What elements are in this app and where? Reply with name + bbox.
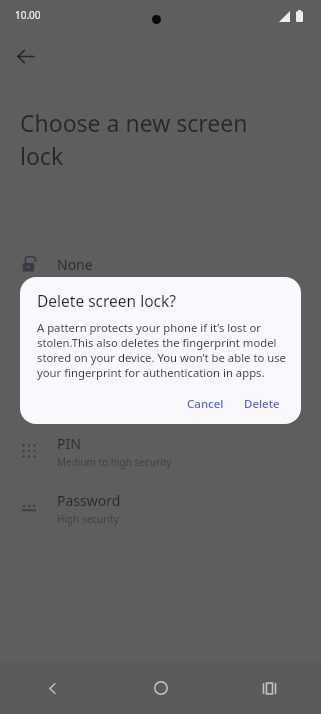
button[interactable]: Back — [5, 36, 45, 76]
button[interactable]: Back — [30, 666, 74, 710]
staticText: None — [57, 255, 93, 274]
button[interactable]: Recent apps — [247, 666, 291, 710]
staticText: Cancel — [187, 396, 224, 412]
button[interactable]: Delete — [236, 391, 288, 417]
button[interactable]: Cancel — [179, 391, 232, 417]
staticText: Password — [57, 491, 121, 510]
button[interactable]: Password — [0, 485, 321, 531]
staticText: Choose a new screen lock — [20, 107, 292, 172]
staticText: Delete — [244, 396, 280, 412]
staticText: A pattern protects your phone if it’s lo… — [37, 320, 287, 380]
staticText: PIN — [57, 434, 81, 453]
staticText: Medium to high security — [57, 455, 172, 469]
button[interactable]: None — [0, 244, 321, 284]
staticText: Delete screen lock? — [37, 290, 177, 311]
staticText: High security — [57, 512, 119, 526]
button[interactable]: Home — [139, 666, 183, 710]
staticText: 10.00 — [15, 8, 41, 22]
button[interactable]: PIN — [0, 428, 321, 474]
